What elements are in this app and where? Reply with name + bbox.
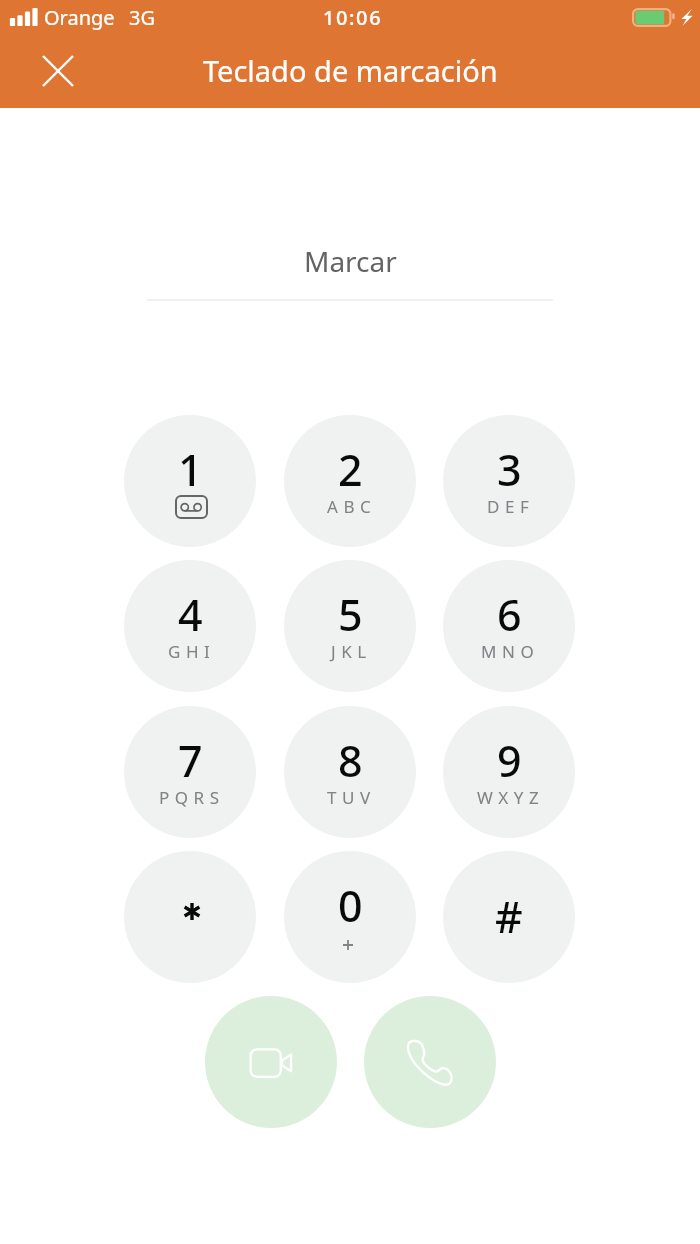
staticText: G H I [168,640,211,663]
button[interactable]: 9 [443,706,575,838]
button[interactable]: 1 [124,415,256,547]
button[interactable]: Close [28,41,88,101]
button[interactable]: Star key [124,851,256,983]
button[interactable]: Video call [205,996,337,1128]
button[interactable]: 8 [284,706,416,838]
staticText: 3 [497,440,522,499]
staticText: # [495,887,523,946]
staticText: D E F [487,495,530,518]
staticText: T U V [327,786,371,809]
staticText: W X Y Z [477,786,540,809]
staticText: 10:06 [323,4,383,31]
button[interactable]: # [443,851,575,983]
staticText: 0 [338,876,363,935]
button[interactable]: 2 [284,415,416,547]
staticText: P Q R S [159,786,220,809]
staticText: 9 [497,731,522,790]
staticText: 3G [129,4,155,31]
staticText: A B C [327,495,372,518]
staticText: 4 [178,585,203,644]
staticText: 2 [338,440,363,499]
button[interactable]: 6 [443,560,575,692]
staticText: Orange [44,4,115,31]
button[interactable]: 4 [124,560,256,692]
button[interactable]: 5 [284,560,416,692]
staticText: Teclado de marcación [203,51,498,90]
staticText: J K L [331,640,367,663]
staticText: 8 [338,731,363,790]
button[interactable]: 3 [443,415,575,547]
staticText: 5 [338,585,363,644]
staticText: M N O [481,640,535,663]
button[interactable]: 0 [284,851,416,983]
staticText: 6 [497,585,522,644]
button[interactable]: 7 [124,706,256,838]
button[interactable]: Call [364,996,496,1128]
staticText: 7 [178,731,203,790]
staticText: 1 [178,440,203,499]
staticText: Marcar [304,242,397,280]
